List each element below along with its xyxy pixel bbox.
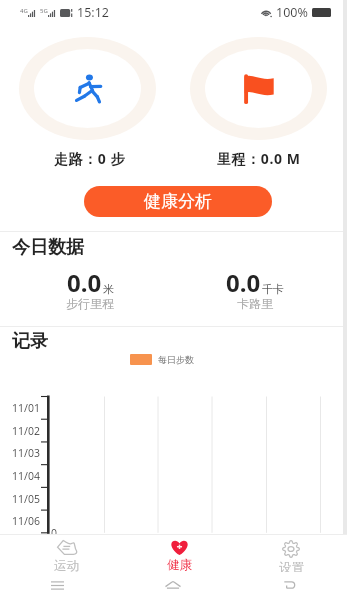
staticText: 11/03 bbox=[12, 446, 40, 460]
staticText: 0.0 bbox=[226, 266, 261, 299]
staticText: 每日步数 bbox=[158, 354, 194, 365]
button[interactable]: Back bbox=[231, 572, 347, 598]
staticText: 11/05 bbox=[12, 492, 40, 506]
staticText: 11/02 bbox=[12, 424, 40, 438]
staticText: 里程：0.0 M bbox=[217, 149, 301, 168]
staticText: 步行里程 bbox=[66, 296, 114, 311]
staticText: 11/04 bbox=[12, 469, 40, 483]
staticText: 运动 bbox=[54, 558, 79, 572]
button[interactable]: 设置 bbox=[235, 540, 347, 572]
staticText: 0.0 bbox=[67, 266, 102, 299]
staticText: 健康分析 bbox=[144, 191, 212, 212]
button[interactable]: 运动 bbox=[10, 540, 123, 572]
button[interactable]: 健康 bbox=[123, 540, 235, 572]
staticText: 记录 bbox=[12, 330, 48, 353]
staticText: 卡路里 bbox=[237, 296, 273, 311]
staticText: 走路：0 步 bbox=[54, 149, 126, 168]
button[interactable]: 健康分析 bbox=[84, 186, 272, 217]
staticText: 4G bbox=[20, 7, 28, 15]
staticText: 100% bbox=[276, 4, 308, 21]
staticText: 5G bbox=[40, 7, 48, 15]
staticText: 设置 bbox=[279, 560, 304, 572]
staticText: 0 bbox=[51, 526, 58, 540]
staticText: 11/06 bbox=[12, 514, 40, 528]
staticText: 11/01 bbox=[12, 401, 40, 415]
button[interactable]: Home bbox=[115, 572, 231, 598]
staticText: 千卡 bbox=[262, 282, 284, 296]
staticText: 健康 bbox=[167, 557, 192, 572]
staticText: 今日数据 bbox=[12, 236, 84, 259]
staticText: 米 bbox=[103, 282, 114, 296]
staticText: 15:12 bbox=[77, 4, 109, 21]
button[interactable]: Recent apps bbox=[0, 572, 115, 598]
